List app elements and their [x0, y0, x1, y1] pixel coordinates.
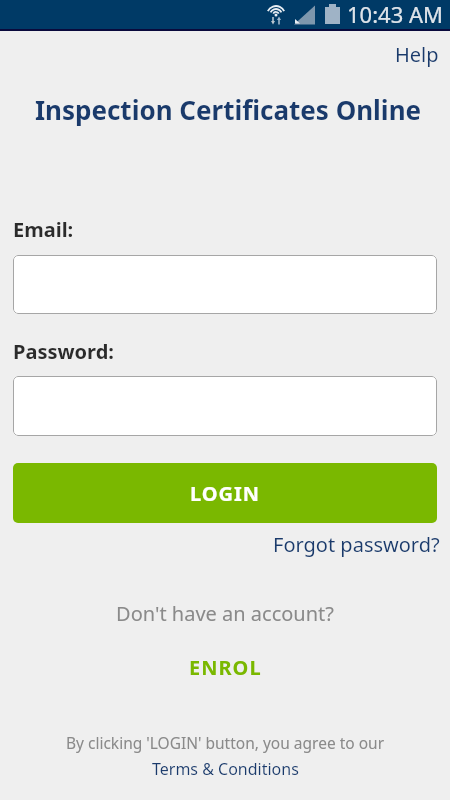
- button[interactable]: ENROL: [189, 654, 262, 681]
- staticText: 10:43 AM: [347, 0, 443, 28]
- staticText: Forgot password?: [273, 531, 440, 558]
- staticText: Terms & Conditions: [152, 758, 299, 780]
- staticText: LOGIN: [190, 480, 261, 507]
- staticText: By clicking 'LOGIN' button, you agree to…: [13, 732, 437, 753]
- button[interactable]: [13, 376, 437, 436]
- button[interactable]: Forgot password?: [273, 531, 440, 558]
- staticText: Inspection Certificates Online: [16, 92, 440, 127]
- staticText: Password:: [13, 338, 114, 365]
- staticText: ENROL: [189, 654, 262, 681]
- staticText: Email:: [13, 216, 74, 243]
- staticText: Don't have an account?: [13, 600, 437, 627]
- button[interactable]: LOGIN: [13, 463, 437, 523]
- button[interactable]: [13, 255, 437, 314]
- staticText: Help: [395, 41, 439, 68]
- button[interactable]: Help: [395, 41, 439, 68]
- button[interactable]: Terms & Conditions: [152, 758, 299, 780]
